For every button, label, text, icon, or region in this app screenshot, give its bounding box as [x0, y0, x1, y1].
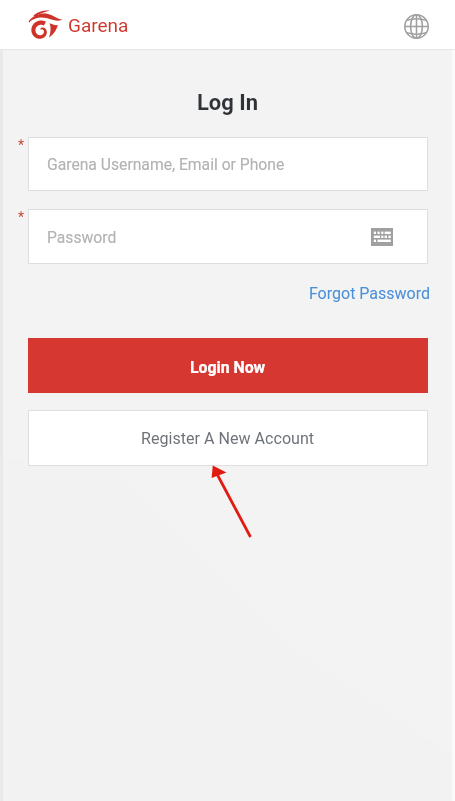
staticText: Garena — [68, 14, 129, 36]
button[interactable]: Register A New Account — [28, 410, 428, 466]
button[interactable]: Login Now — [28, 338, 428, 393]
button[interactable]: Password — [28, 209, 428, 264]
staticText: Register A New Account — [141, 429, 315, 448]
button[interactable]: Garena Username, Email or Phone — [28, 137, 428, 191]
button[interactable]: Forgot Password — [0, 284, 430, 303]
staticText: Garena Username, Email or Phone — [47, 155, 285, 173]
button[interactable]: Show keyboard — [371, 228, 393, 246]
staticText: Password — [47, 228, 117, 246]
button[interactable]: Garena — [27, 10, 129, 41]
button[interactable]: Change language — [397, 7, 435, 45]
staticText: * — [18, 137, 25, 153]
staticText: Log In — [0, 90, 455, 116]
staticText: * — [18, 209, 25, 225]
staticText: Login Now — [190, 358, 266, 377]
